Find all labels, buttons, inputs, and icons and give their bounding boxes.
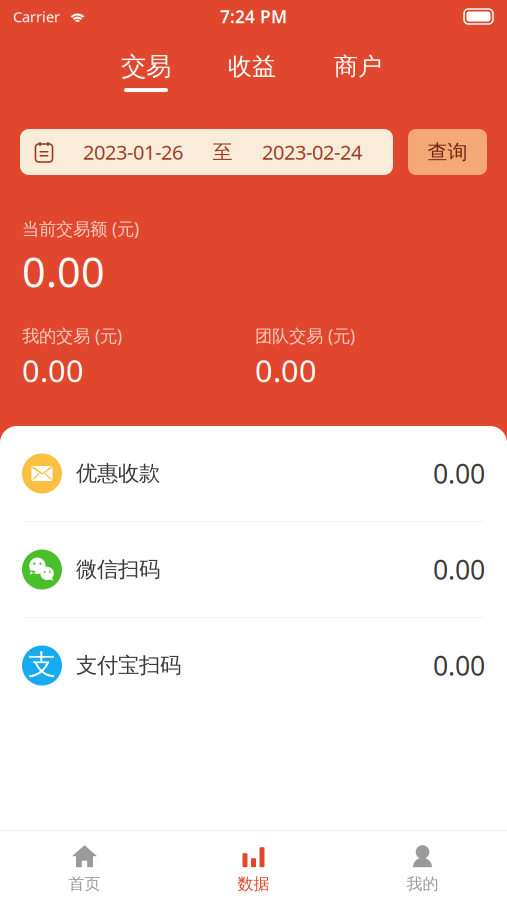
staticText: 0.00 [433, 456, 485, 491]
staticText: 微信扫码 [76, 556, 160, 583]
staticText: 2023-02-24 [262, 139, 362, 165]
button[interactable]: 收益 [199, 33, 305, 96]
staticText: 2023-01-26 [83, 139, 183, 165]
button[interactable]: 我的 [338, 836, 507, 900]
staticText: 支付宝扫码 [76, 652, 181, 679]
button[interactable]: 首页 [0, 836, 169, 900]
button[interactable]: 数据 [169, 836, 338, 900]
staticText: Carrier [13, 7, 60, 26]
staticText: 优惠收款 [76, 460, 160, 487]
staticText: 0.00 [433, 648, 485, 683]
staticText: 支 [28, 648, 56, 682]
staticText: 团队交易 (元) [255, 324, 355, 347]
staticText: 至 [212, 140, 232, 164]
button[interactable]: 交易 [93, 33, 199, 96]
staticText: 我的 [406, 874, 438, 894]
staticText: 交易 [121, 51, 171, 82]
staticText: 收益 [228, 52, 276, 81]
button[interactable]: 2023-01-26 [20, 129, 393, 175]
button[interactable]: 微信扫码 [0, 522, 507, 617]
staticText: 首页 [68, 874, 100, 894]
staticText: 商户 [334, 52, 382, 81]
button[interactable]: 商户 [305, 33, 411, 96]
staticText: 0.00 [255, 350, 317, 391]
button[interactable]: 查询 [408, 129, 487, 175]
staticText: 0.00 [433, 552, 485, 587]
staticText: 0.00 [22, 350, 84, 391]
button[interactable]: 优惠收款 [0, 426, 507, 521]
staticText: 0.00 [22, 244, 105, 299]
staticText: 7:24 PM [220, 5, 287, 28]
staticText: 当前交易额 (元) [22, 217, 139, 240]
staticText: 查询 [427, 140, 467, 164]
button[interactable]: 支 [0, 618, 507, 713]
staticText: 我的交易 (元) [22, 324, 122, 347]
staticText: 数据 [237, 874, 269, 894]
